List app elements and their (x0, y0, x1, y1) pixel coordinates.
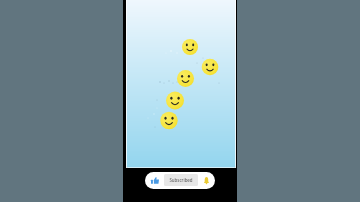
button[interactable]: Like (145, 172, 164, 189)
button[interactable]: Notifications (198, 172, 215, 189)
button[interactable]: Subscribed (164, 174, 198, 186)
button[interactable]: Play or pause video (126, 0, 236, 168)
staticText: Subscribed (169, 177, 193, 183)
